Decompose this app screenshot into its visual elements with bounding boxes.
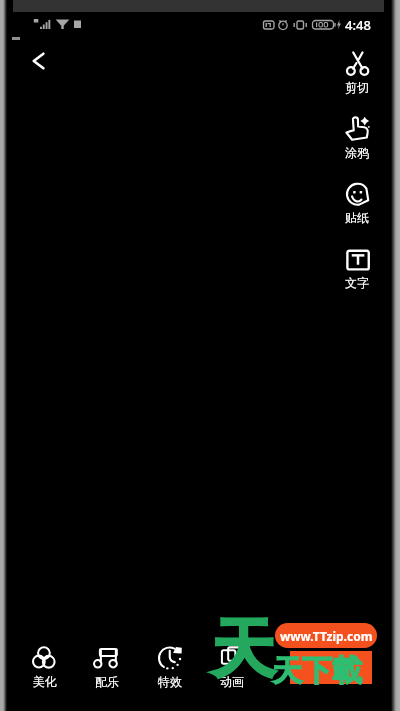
staticText: 特效 <box>158 674 182 689</box>
button[interactable]: 剪切 <box>332 51 382 95</box>
staticText: 天 <box>211 609 275 690</box>
button[interactable]: www.TTzip.com <box>275 623 377 648</box>
staticText: 动画 <box>220 674 244 689</box>
button[interactable]: 文字 <box>332 246 382 290</box>
button[interactable]: 贴纸 <box>332 181 382 225</box>
staticText: 剪切 <box>345 80 369 95</box>
button[interactable]: 动画 <box>207 644 257 689</box>
button[interactable]: 特效 <box>145 644 195 689</box>
staticText: 配乐 <box>95 674 119 689</box>
staticText: 文字 <box>345 275 369 290</box>
button[interactable]: 美化 <box>20 644 70 689</box>
staticText: 天下載 <box>272 652 362 690</box>
button[interactable]: 配乐 <box>82 644 132 689</box>
staticText: www.TTzip.com <box>280 628 373 644</box>
staticText: 贴纸 <box>345 210 369 225</box>
staticText: 美化 <box>33 674 57 689</box>
staticText: 涂鸦 <box>345 145 369 160</box>
staticText: 4:48 <box>345 16 371 34</box>
button[interactable]: Back <box>21 43 57 79</box>
button[interactable]: 涂鸦 <box>332 116 382 160</box>
